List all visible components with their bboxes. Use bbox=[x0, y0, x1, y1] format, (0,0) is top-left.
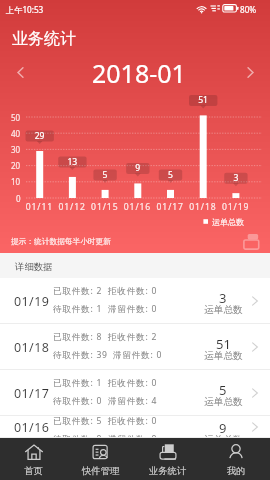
staticText: 待取件数: 0 bbox=[53, 395, 103, 407]
staticText: 业务统计 bbox=[12, 29, 76, 49]
button[interactable]: 业务统计 bbox=[134, 438, 202, 480]
button[interactable]: Previous month bbox=[0, 55, 40, 89]
staticText: 首页 bbox=[24, 465, 43, 477]
staticText: 我的 bbox=[227, 465, 246, 477]
staticText: 提示：统计数据每半小时更新 bbox=[11, 237, 111, 247]
staticText: 80% bbox=[240, 4, 257, 15]
staticText: 滞留件数: 4 bbox=[108, 395, 158, 407]
staticText: 上午10:53 bbox=[6, 4, 44, 15]
staticText: 已取件数: 1 bbox=[53, 377, 103, 389]
button[interactable]: 我的 bbox=[202, 438, 270, 480]
staticText: 已取件数: 8 bbox=[53, 331, 103, 343]
staticText: 滞留件数: 0 bbox=[108, 433, 158, 437]
staticText: 待取件数: 0 bbox=[53, 433, 103, 437]
button[interactable]: 快件管理 bbox=[67, 438, 134, 480]
staticText: 拒收件数: 0 bbox=[108, 415, 158, 427]
staticText: 2018-01 bbox=[92, 56, 186, 90]
button[interactable]: Next month bbox=[230, 55, 270, 89]
staticText: 9 bbox=[219, 419, 227, 437]
staticText: 业务统计 bbox=[149, 465, 187, 477]
staticText: 01/16 bbox=[14, 419, 50, 436]
staticText: 滞留件数: 0 bbox=[113, 349, 163, 361]
staticText: 01/17 bbox=[14, 385, 50, 402]
staticText: 5 bbox=[219, 381, 227, 399]
staticText: 01/18 bbox=[14, 339, 50, 356]
staticText: 拒收件数: 0 bbox=[108, 377, 158, 389]
button[interactable]: 01/16 bbox=[0, 416, 270, 438]
button[interactable]: Export bbox=[242, 232, 261, 251]
staticText: 滞留件数: 0 bbox=[108, 303, 158, 315]
staticText: 待取件数: 1 bbox=[53, 303, 103, 315]
staticText: 51 bbox=[216, 335, 231, 353]
staticText: 运单总数 bbox=[204, 350, 243, 362]
staticText: 运单总数 bbox=[204, 304, 243, 316]
button[interactable]: 01/19 bbox=[0, 278, 270, 324]
staticText: 3 bbox=[219, 289, 227, 307]
staticText: 已取件数: 5 bbox=[53, 415, 103, 427]
staticText: 待取件数: 39 bbox=[53, 349, 108, 361]
staticText: 运单总数 bbox=[204, 434, 243, 438]
button[interactable]: 01/17 bbox=[0, 370, 270, 416]
staticText: 拒收件数: 0 bbox=[108, 285, 158, 297]
staticText: 运单总数 bbox=[204, 396, 243, 408]
staticText: 快件管理 bbox=[82, 465, 120, 477]
staticText: 拒收件数: 2 bbox=[108, 331, 158, 343]
staticText: 已取件数: 2 bbox=[53, 285, 103, 297]
staticText: 01/19 bbox=[14, 293, 50, 310]
staticText: 详细数据 bbox=[15, 261, 53, 273]
button[interactable]: 01/18 bbox=[0, 324, 270, 370]
button[interactable]: 首页 bbox=[0, 438, 67, 480]
